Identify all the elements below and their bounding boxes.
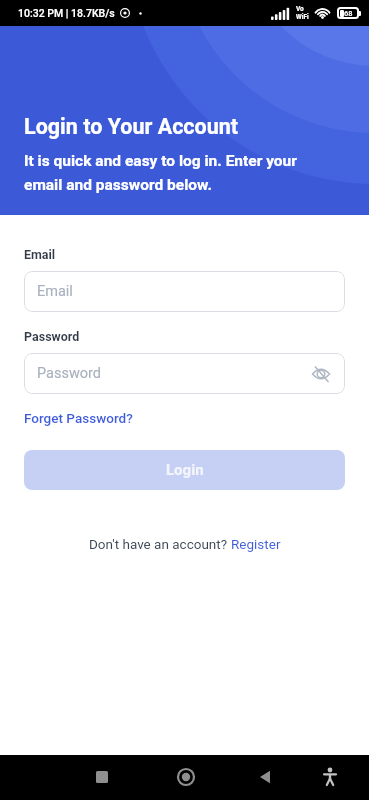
staticText: Don't have an account? xyxy=(89,536,231,552)
staticText: Password xyxy=(37,365,102,382)
staticText: Password xyxy=(24,329,80,344)
staticText: 10:32 PM | 18.7KB/s xyxy=(18,7,115,19)
button[interactable] xyxy=(253,765,277,789)
button[interactable]: Forget Password? xyxy=(24,410,133,426)
button[interactable]: Password xyxy=(24,353,345,394)
button[interactable] xyxy=(318,765,342,789)
button[interactable]: Register xyxy=(231,536,281,552)
button[interactable]: Email xyxy=(24,271,345,312)
staticText: Email xyxy=(24,247,56,262)
staticText: 68 xyxy=(344,9,353,18)
staticText: Email xyxy=(37,283,73,300)
staticText: It is quick and easy to log in. Enter yo… xyxy=(24,152,297,193)
button[interactable] xyxy=(174,765,198,789)
staticText: Login to Your Account xyxy=(24,114,239,139)
button[interactable]: Login xyxy=(24,450,345,490)
button[interactable] xyxy=(90,765,114,789)
button[interactable] xyxy=(310,363,332,385)
staticText: Vo xyxy=(296,5,304,13)
staticText: WiFi xyxy=(296,13,309,21)
staticText: Login xyxy=(166,461,204,479)
